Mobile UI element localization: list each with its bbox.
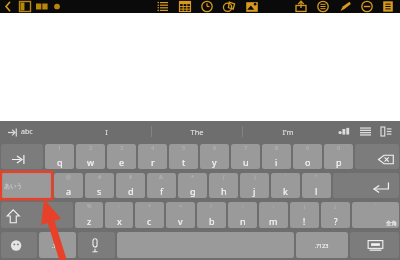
button[interactable]: -: [105, 202, 133, 228]
button[interactable]: Text options: [355, 121, 375, 142]
button[interactable]: .?123: [296, 232, 348, 258]
button[interactable]: Emoji: [1, 232, 37, 258]
staticText: k: [283, 185, 288, 197]
staticText: w: [87, 156, 95, 168]
button[interactable]: Settings: [375, 121, 397, 142]
button[interactable]: /: [197, 202, 226, 228]
button[interactable]: &: [147, 173, 176, 198]
staticText: &: [159, 173, 164, 180]
staticText: (: [223, 173, 225, 180]
button[interactable]: I: [62, 121, 151, 142]
button[interactable]: 5: [169, 144, 198, 169]
button[interactable]: Predictions: [333, 121, 355, 142]
button[interactable]: Media: [240, 0, 264, 13]
staticText: ?: [334, 216, 338, 227]
staticText: あいう: [4, 182, 23, 190]
staticText: ;: [273, 202, 275, 209]
button[interactable]: ): [240, 173, 269, 198]
staticText: 2: [89, 144, 93, 151]
button[interactable]: Shift: [1, 202, 73, 228]
button[interactable]: #: [85, 173, 114, 198]
staticText: ": [315, 173, 318, 180]
button[interactable]: Return: [333, 173, 399, 198]
button[interactable]: +: [135, 202, 164, 228]
button[interactable]: I'm: [243, 121, 333, 142]
staticText: ): [254, 173, 256, 180]
staticText: 全角: [386, 220, 397, 227]
staticText: :: [242, 202, 244, 209]
staticText: The: [190, 127, 204, 137]
button[interactable]: Full width: [352, 202, 399, 228]
button[interactable]: 3: [107, 144, 136, 169]
staticText: %: [87, 202, 92, 209]
button[interactable]: 0: [324, 144, 353, 169]
staticText: /: [210, 202, 213, 209]
button[interactable]: %: [75, 202, 103, 228]
button[interactable]: (: [209, 173, 238, 198]
button[interactable]: Tab: [1, 144, 43, 169]
button[interactable]: ;: [259, 202, 288, 228]
button[interactable]: 7: [231, 144, 260, 169]
button[interactable]: Sidebar: [16, 0, 34, 13]
button[interactable]: ¥: [116, 173, 145, 198]
staticText: `: [375, 202, 377, 209]
staticText: o: [305, 156, 311, 168]
staticText: 0: [337, 144, 341, 151]
button[interactable]: Dictation: [78, 232, 115, 258]
button[interactable]: 9: [293, 144, 322, 169]
staticText: .?12: [52, 242, 63, 249]
button[interactable]: 2: [76, 144, 105, 169]
staticText: u: [243, 156, 249, 168]
staticText: z: [87, 215, 92, 227]
staticText: n: [240, 215, 246, 227]
staticText: x: [117, 215, 122, 227]
button[interactable]: More: [50, 0, 64, 13]
button[interactable]: .?12: [39, 232, 76, 258]
staticText: 9: [306, 144, 310, 151]
staticText: ¡: [304, 202, 306, 209]
staticText: c: [147, 215, 152, 227]
staticText: f: [160, 185, 164, 197]
button[interactable]: 1: [45, 144, 74, 169]
staticText: -: [118, 202, 120, 209]
button[interactable]: Backspace: [355, 144, 399, 169]
button[interactable]: ': [271, 173, 300, 198]
staticText: +: [148, 202, 152, 209]
button[interactable]: abc: [0, 121, 62, 142]
staticText: y: [212, 156, 217, 168]
button[interactable]: @: [54, 173, 83, 198]
staticText: b: [209, 215, 215, 227]
button[interactable]: ¿: [321, 202, 350, 228]
button[interactable]: Hide keyboard: [350, 232, 399, 258]
staticText: !: [303, 216, 306, 227]
button[interactable]: 6: [200, 144, 229, 169]
button[interactable]: 8: [262, 144, 291, 169]
button[interactable]: Table: [174, 0, 196, 13]
staticText: 8: [275, 144, 279, 151]
staticText: 6: [213, 144, 217, 151]
button[interactable]: List: [152, 0, 174, 13]
button[interactable]: Document: [378, 0, 398, 13]
button[interactable]: =: [166, 202, 195, 228]
button[interactable]: Highlight: [334, 0, 356, 13]
button[interactable]: The: [152, 121, 242, 142]
button[interactable]: Shapes: [218, 0, 240, 13]
staticText: =: [179, 202, 183, 209]
button[interactable]: Back: [0, 0, 16, 13]
button[interactable]: Comments: [312, 0, 334, 13]
staticText: 4: [151, 144, 155, 151]
button[interactable]: ¡: [290, 202, 319, 228]
staticText: t: [182, 156, 186, 168]
button[interactable]: Layout: [34, 0, 50, 13]
button[interactable]: あいう: [1, 173, 52, 198]
button[interactable]: 4: [138, 144, 167, 169]
button[interactable]: Hide: [356, 0, 378, 13]
button[interactable]: Share: [290, 0, 312, 13]
button[interactable]: Clock: [196, 0, 218, 13]
staticText: s: [97, 185, 102, 197]
button[interactable]: ": [302, 173, 331, 198]
button[interactable]: :: [228, 202, 257, 228]
button[interactable]: *: [178, 173, 207, 198]
staticText: l: [315, 185, 318, 197]
